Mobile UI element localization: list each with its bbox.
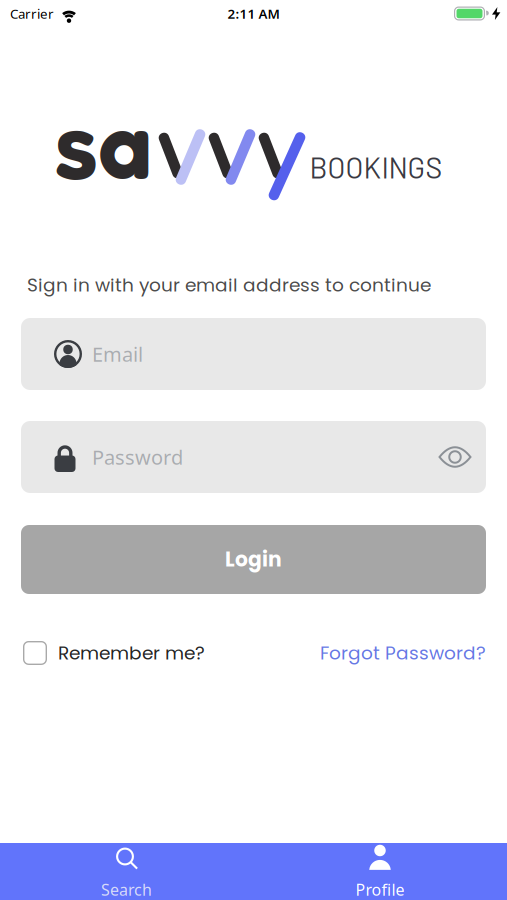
button[interactable]: Login bbox=[21, 525, 486, 594]
staticText: Remember me? bbox=[58, 640, 205, 666]
staticText: sa bbox=[54, 84, 152, 201]
staticText: Forgot Password? bbox=[320, 640, 486, 666]
button[interactable]: Profile bbox=[253, 843, 507, 900]
staticText: Login bbox=[225, 545, 282, 574]
staticText: Carrier bbox=[10, 5, 54, 22]
staticText: 2:11 AM bbox=[227, 5, 279, 22]
button[interactable]: Remember me? bbox=[23, 640, 205, 666]
staticText: Profile bbox=[355, 879, 404, 900]
staticText: Password bbox=[92, 444, 183, 470]
button[interactable]: Forgot Password? bbox=[320, 640, 486, 666]
button[interactable]: Search bbox=[0, 843, 253, 900]
staticText: Sign in with your email address to conti… bbox=[27, 272, 431, 298]
staticText: Search bbox=[101, 879, 152, 900]
staticText: Email bbox=[92, 341, 143, 367]
button[interactable]: Show password bbox=[438, 446, 486, 468]
staticText: BOOKINGS bbox=[309, 150, 442, 184]
